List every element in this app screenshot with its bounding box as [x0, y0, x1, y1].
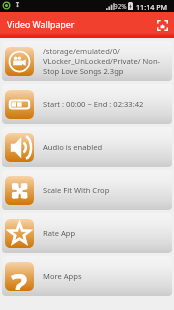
- button[interactable]: Audio: [2, 127, 172, 167]
- button[interactable]: Video file: [2, 41, 172, 81]
- button[interactable]: Set as wallpaper: [155, 18, 169, 32]
- staticText: More Apps: [43, 271, 82, 281]
- button[interactable]: Scale: [2, 170, 172, 210]
- staticText: 11:14 PM: [136, 2, 168, 12]
- staticText: Start : 00:00 ~ End : 02:33:42: [43, 99, 144, 109]
- staticText: Audio is enabled: [43, 142, 103, 152]
- staticText: 92%: [114, 2, 127, 11]
- staticText: Scale Fit With Crop: [43, 185, 110, 195]
- staticText: Rate App: [43, 228, 76, 238]
- staticText: Video Wallpaper: [7, 19, 75, 31]
- staticText: Stop Love Songs 2.3gp: [43, 66, 124, 76]
- staticText: ?: [11, 262, 28, 290]
- button[interactable]: Trim: [2, 84, 172, 124]
- button[interactable]: More apps: [2, 256, 172, 296]
- button[interactable]: Rate: [2, 213, 172, 253]
- staticText: VLocker_UnLocked/Private/ Non-: [43, 56, 161, 66]
- staticText: /storage/emulated/0/: [43, 46, 120, 56]
